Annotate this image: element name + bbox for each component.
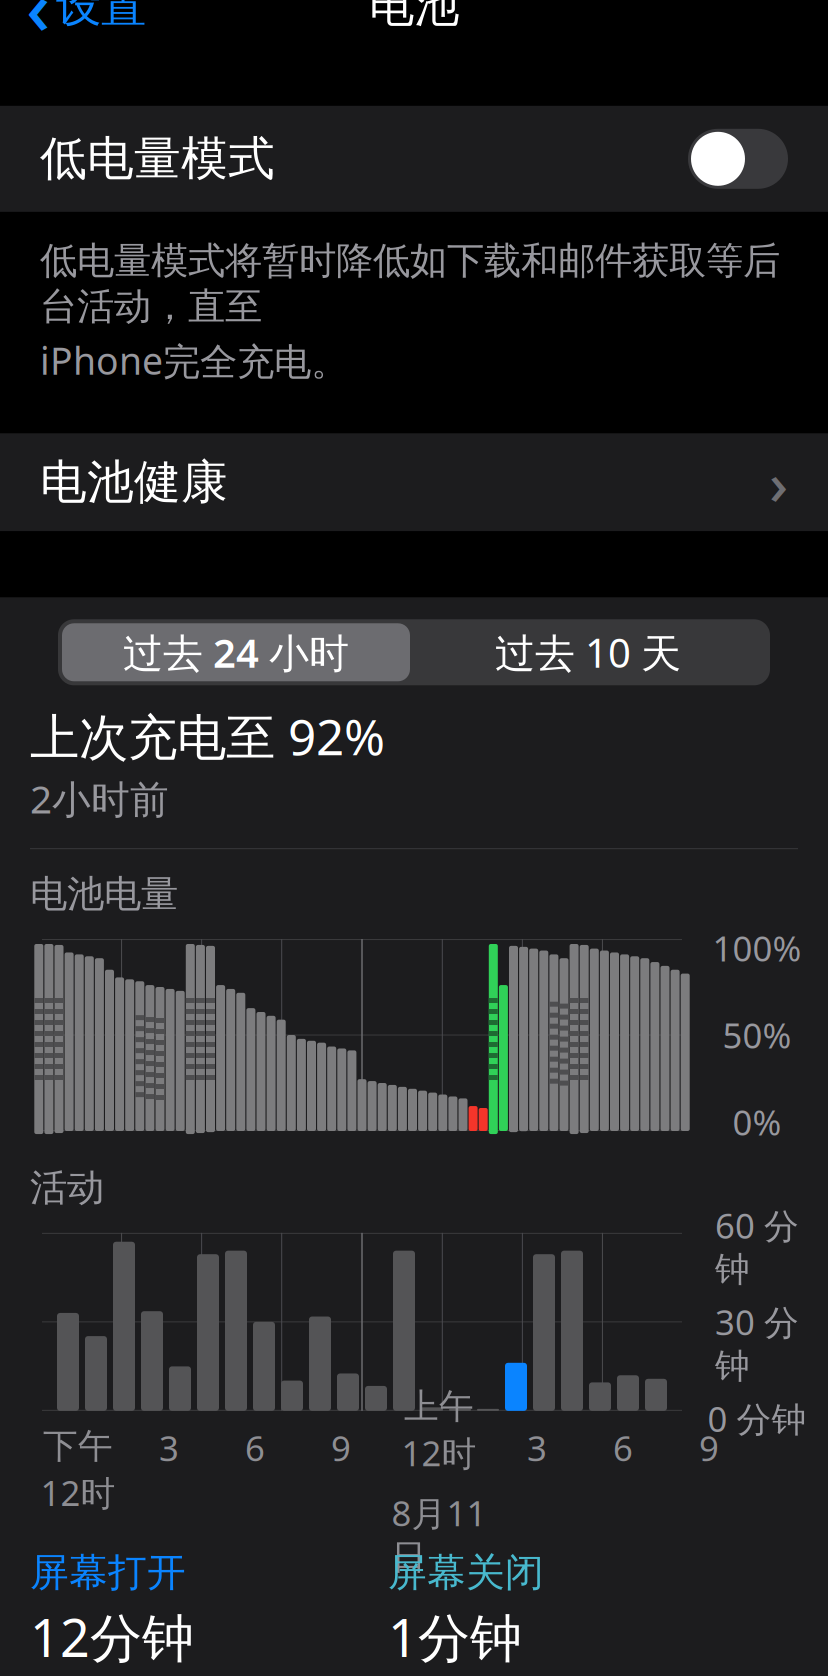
staticText: 2小时前 [30, 773, 169, 824]
staticText: 6 [613, 1425, 633, 1471]
staticText: 上次充电至 92% [30, 703, 385, 769]
staticText: 0% [732, 1099, 781, 1145]
staticText: 9 [699, 1425, 719, 1471]
staticText: 12时 [40, 1469, 115, 1515]
staticText: 屏幕打开 [30, 1549, 186, 1596]
staticText: ‹ [26, 0, 50, 55]
button[interactable]: 低电量模式 [0, 106, 828, 212]
staticText: 6 [245, 1425, 265, 1471]
staticText: 3 [527, 1425, 547, 1471]
staticText: 1分钟 [388, 1602, 522, 1671]
staticText: 30 分钟 [715, 1299, 799, 1387]
staticText: 下午 [43, 1425, 113, 1467]
staticText: 电池电量 [30, 871, 178, 917]
staticText: iPhone完全充电。 [40, 335, 348, 385]
staticText: 0 分钟 [707, 1395, 806, 1441]
staticText: 8月11日 [391, 1490, 486, 1578]
staticText: 低电量模式 [40, 130, 275, 187]
staticText: 上午 [404, 1385, 474, 1428]
staticText: 12分钟 [30, 1602, 194, 1671]
button[interactable]: 过去 24 小时 [62, 623, 410, 681]
staticText: › [769, 443, 788, 521]
button[interactable]: 过去 10 天 [410, 623, 766, 681]
staticText: 屏幕关闭 [388, 1549, 544, 1596]
staticText: 过去 24 小时 [123, 626, 349, 679]
staticText: 电池健康 [40, 454, 228, 511]
staticText: 50% [722, 1012, 791, 1058]
staticText: 电池 [369, 0, 459, 34]
staticText: 3 [159, 1425, 179, 1471]
button[interactable]: ‹ [0, 0, 172, 49]
staticText: 设置 [56, 0, 146, 34]
staticText: 9 [331, 1425, 351, 1471]
staticText: 100% [712, 925, 801, 971]
staticText: 活动 [30, 1165, 104, 1211]
staticText: 60 分钟 [715, 1202, 799, 1291]
staticText: 低电量模式将暂时降低如下载和邮件获取等后台活动，直至 [40, 238, 780, 329]
staticText: 过去 10 天 [495, 626, 681, 679]
staticText: 12时 [401, 1430, 476, 1476]
button[interactable]: 电池健康 [0, 433, 828, 531]
